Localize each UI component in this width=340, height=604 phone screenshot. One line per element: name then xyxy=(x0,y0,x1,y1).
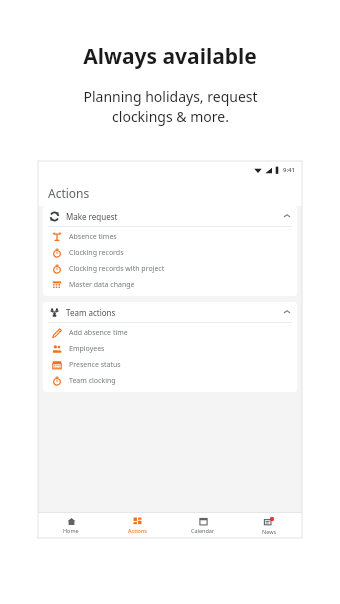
button[interactable]: Presence status xyxy=(43,357,297,373)
button[interactable]: Make request xyxy=(43,206,297,226)
button[interactable]: Calendar xyxy=(170,517,236,534)
button[interactable]: Home xyxy=(38,517,104,534)
staticText: Presence status xyxy=(69,360,121,370)
staticText: Home xyxy=(63,527,79,534)
staticText: Clocking records xyxy=(69,248,124,258)
staticText: Clocking records with project xyxy=(69,264,165,274)
button[interactable]: Actions xyxy=(104,517,170,534)
staticText: Employees xyxy=(69,344,105,354)
button[interactable]: Clocking records with project xyxy=(43,261,297,277)
button[interactable]: Employees xyxy=(43,341,297,357)
staticText: Planning holidays, request clockings & m… xyxy=(83,87,258,126)
button[interactable]: Team clocking xyxy=(43,373,297,389)
staticText: Calendar xyxy=(191,527,215,534)
button[interactable]: Clocking records xyxy=(43,245,297,261)
staticText: Always available xyxy=(83,42,257,71)
button[interactable]: Team actions xyxy=(43,302,297,322)
staticText: Team actions xyxy=(66,307,116,318)
staticText: 9:41 xyxy=(283,166,295,174)
staticText: Add absence time xyxy=(69,328,128,338)
staticText: Actions xyxy=(128,527,147,534)
button[interactable]: News xyxy=(236,517,302,535)
staticText: News xyxy=(262,528,277,535)
button[interactable]: Absence times xyxy=(43,229,297,245)
button[interactable]: Master data change xyxy=(43,277,297,293)
staticText: Absence times xyxy=(69,232,117,242)
staticText: Team clocking xyxy=(69,376,116,386)
staticText: Make request xyxy=(66,211,118,222)
staticText: Master data change xyxy=(69,280,135,290)
staticText: Actions xyxy=(48,185,90,201)
button[interactable]: Add absence time xyxy=(43,325,297,341)
